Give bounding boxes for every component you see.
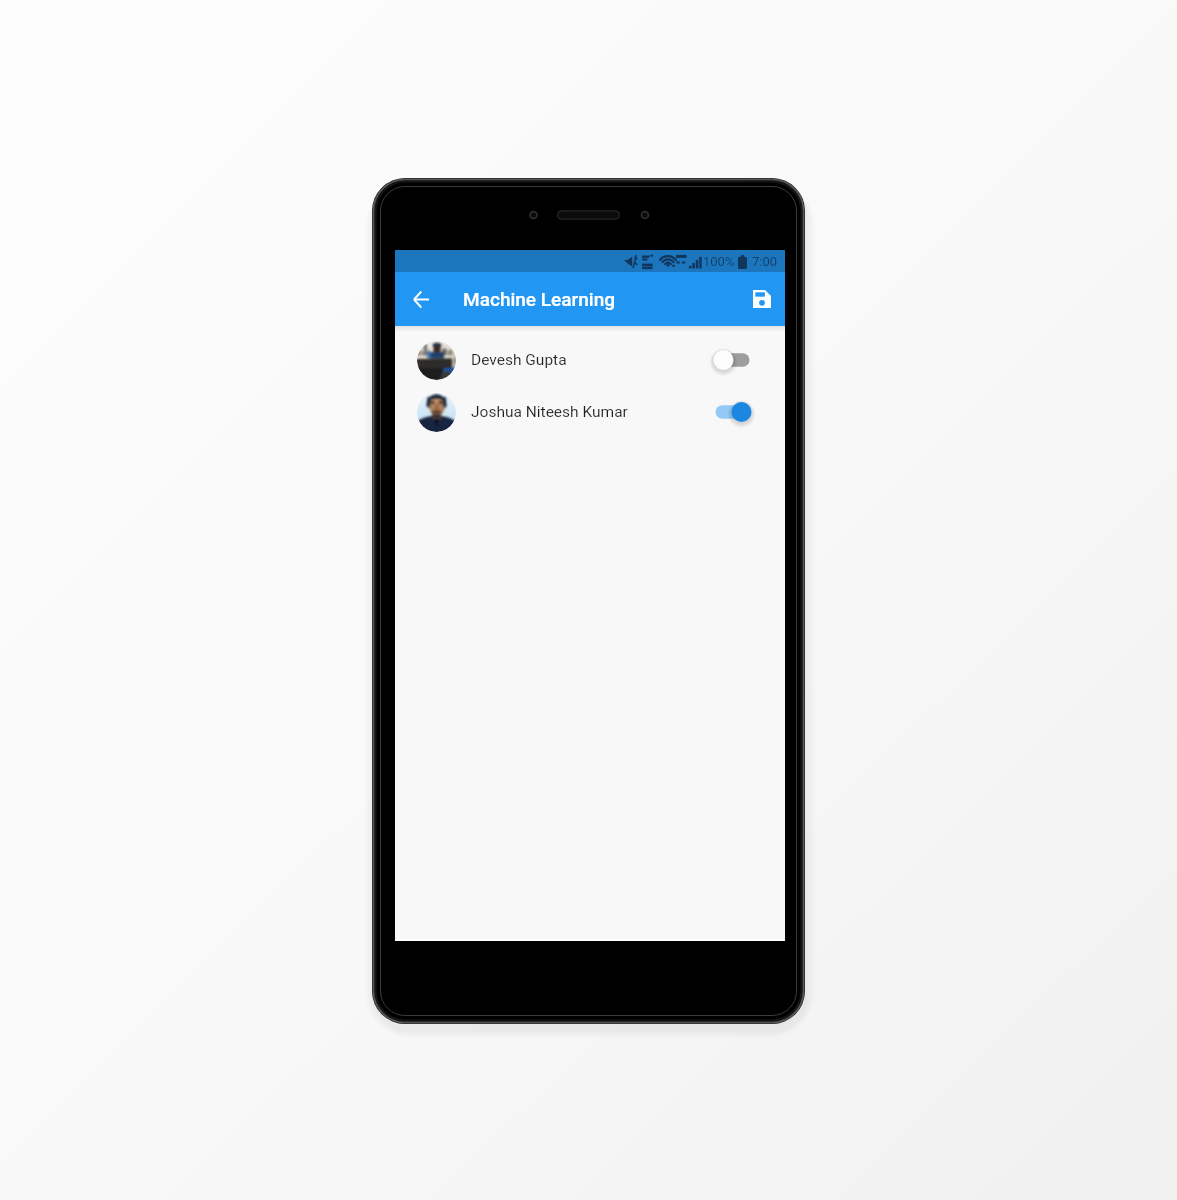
- staticText: Machine Learning: [463, 288, 615, 310]
- button[interactable]: Devesh Gupta: [395, 334, 785, 386]
- staticText: Devesh Gupta: [471, 351, 567, 369]
- staticText: 7:00: [752, 254, 778, 269]
- button[interactable]: Back: [402, 272, 440, 326]
- button[interactable]: Disabled: [713, 347, 752, 373]
- button[interactable]: Save: [742, 272, 782, 326]
- button[interactable]: Joshua Niteesh Kumar: [395, 386, 785, 438]
- button[interactable]: Enabled: [713, 399, 752, 425]
- staticText: 100%: [703, 254, 735, 269]
- staticText: Joshua Niteesh Kumar: [471, 403, 628, 421]
